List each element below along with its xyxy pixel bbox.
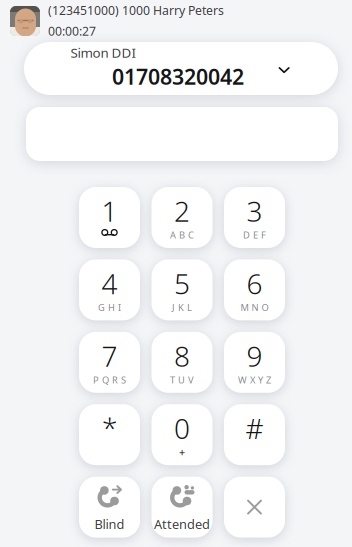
staticText: 01708320042 [112,62,244,91]
staticText: 9 [246,337,262,375]
staticText: Y [258,373,263,386]
staticText: 00:00:27 [48,23,96,39]
button[interactable]: 3 [224,187,285,248]
button[interactable]: 0 [151,404,212,465]
staticText: 3 [246,192,262,230]
staticText: 8 [174,337,190,375]
staticText: 1 [101,192,117,230]
button[interactable]: Simon DDI, 01708320042 [24,42,338,95]
button[interactable]: * [79,404,140,465]
staticText: * [102,409,117,447]
staticText: E [253,229,258,241]
staticText: B [179,229,185,241]
staticText: Simon DDI [70,43,136,62]
staticText: 4 [101,264,117,302]
staticText: C [188,229,194,241]
staticText: W [238,373,247,386]
staticText: 6 [246,264,262,302]
staticText: V [188,373,194,386]
staticText: L [187,301,192,314]
staticText: 7 [101,337,117,375]
staticText: Q [102,373,109,386]
staticText: T [170,373,175,386]
staticText: I [118,301,121,314]
button[interactable]: 1 [79,187,140,248]
staticText: G [98,301,105,314]
button[interactable]: 9 [224,332,285,393]
staticText: S [121,373,126,386]
staticText: X [250,373,255,386]
staticText: N [251,301,258,314]
staticText: 2 [174,192,190,230]
staticText: U [178,373,185,386]
button[interactable]: Attended [151,477,212,538]
staticText: D [243,229,250,241]
staticText: R [112,373,118,386]
button[interactable]: # [224,404,285,465]
button[interactable]: 8 [151,332,212,393]
staticText: Attended [154,515,210,533]
staticText: J [172,301,175,314]
button[interactable]: 5 [151,259,212,320]
button[interactable]: 4 [79,259,140,320]
staticText: M [240,301,248,314]
button[interactable]: 6 [224,259,285,320]
staticText: 0 [174,409,190,447]
staticText: Blind [94,515,124,533]
staticText: A [170,229,176,241]
staticText: (123451000) 1000 Harry Peters [48,2,224,19]
staticText: Z [266,373,271,386]
button[interactable]: 7 [79,332,140,393]
staticText: P [93,373,99,386]
button[interactable]: Clear [224,477,285,538]
staticText: F [261,229,266,241]
staticText: H [108,301,115,314]
staticText: O [261,301,268,314]
staticText: # [245,409,263,447]
button[interactable]: 2 [151,187,212,248]
staticText: + [179,445,185,459]
staticText: 5 [174,264,190,302]
staticText: K [178,301,184,314]
button[interactable]: Blind [79,477,140,538]
